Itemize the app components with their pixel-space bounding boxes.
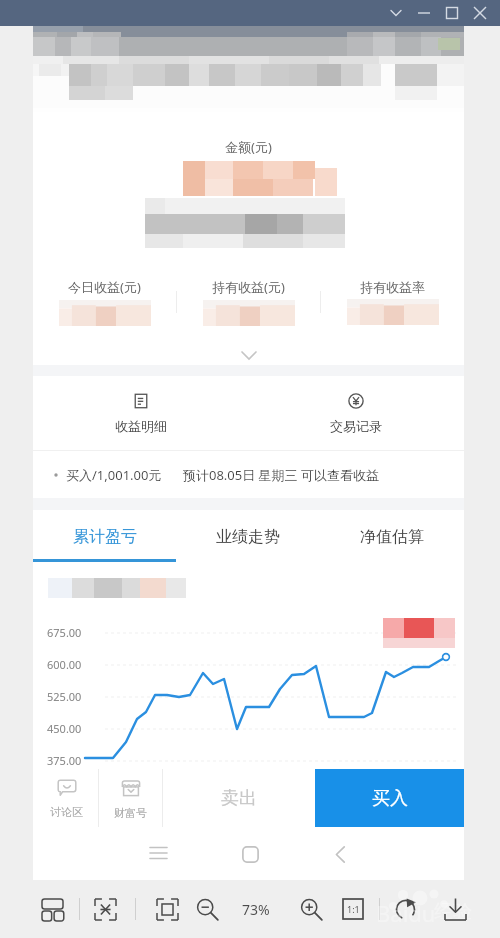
button[interactable]: 财富号 [99, 769, 162, 827]
button[interactable]: Rotate [390, 894, 420, 924]
button[interactable]: Fit width [90, 894, 120, 924]
staticText: 买入 [372, 787, 408, 810]
staticText: 持有收益率 [360, 279, 425, 295]
button[interactable]: Maximize [438, 0, 466, 26]
button[interactable]: Back [325, 839, 355, 869]
staticText: 收益明细 [115, 418, 167, 434]
staticText: 业绩走势 [216, 527, 280, 547]
staticText: 525.00 [47, 689, 82, 704]
button[interactable]: 卖出 [163, 769, 315, 827]
staticText: 预计08.05日 星期三 可以查看收益 [183, 466, 379, 484]
button[interactable]: 净值估算 [320, 510, 464, 563]
button[interactable]: Download [440, 894, 470, 924]
staticText: 交易记录 [330, 418, 382, 434]
button[interactable]: Zoom in [296, 894, 326, 924]
button[interactable]: 今日收益(元) [33, 278, 176, 326]
staticText: 持有收益(元) [212, 278, 285, 296]
staticText: 财富号 [114, 806, 147, 820]
staticText: 累计盈亏 [73, 527, 137, 547]
button[interactable]: Menu [143, 839, 173, 869]
button[interactable]: 业绩走势 [176, 510, 320, 563]
button[interactable]: 累计盈亏 [33, 510, 176, 563]
staticText: 金额(元) [225, 138, 272, 156]
staticText: 经验 [434, 900, 472, 924]
staticText: 卖出 [221, 787, 257, 810]
staticText: 375.00 [47, 753, 82, 768]
button[interactable]: 买入/1,001.00元 [33, 451, 464, 498]
staticText: 675.00 [47, 625, 82, 640]
staticText: 讨论区 [50, 805, 83, 819]
button[interactable]: Collapse [382, 0, 410, 26]
button[interactable]: Actual size [338, 894, 368, 924]
button[interactable]: 持有收益(元) [177, 278, 320, 326]
staticText: 600.00 [47, 657, 82, 672]
staticText: 今日收益(元) [68, 278, 141, 296]
staticText: 1:1 [347, 903, 360, 915]
staticText: 买入/1,001.00元 [66, 466, 162, 484]
button[interactable]: 收益明细 [33, 376, 248, 450]
staticText: Baidu [376, 898, 436, 928]
button[interactable]: Close [466, 0, 494, 26]
button[interactable]: Layout [37, 894, 67, 924]
button[interactable]: 交易记录 [248, 376, 464, 450]
button[interactable]: 买入 [315, 769, 464, 827]
button[interactable]: 讨论区 [35, 769, 98, 827]
button[interactable]: Expand [33, 345, 464, 365]
button[interactable]: Zoom out [192, 894, 222, 924]
staticText: 净值估算 [360, 527, 424, 547]
staticText: 450.00 [47, 721, 82, 736]
button[interactable]: Actual frame [152, 894, 182, 924]
button[interactable]: Minimize [410, 0, 438, 26]
button[interactable]: Home [235, 839, 265, 869]
button[interactable]: 持有收益率 [321, 279, 464, 325]
staticText: 73% [242, 900, 270, 919]
